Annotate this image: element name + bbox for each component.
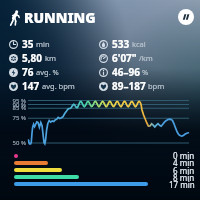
- staticText: 147: [22, 79, 40, 93]
- staticText: km: [45, 53, 57, 63]
- staticText: kcal: [132, 39, 146, 49]
- staticText: 6'07": [112, 51, 137, 65]
- staticText: 76: [22, 65, 34, 79]
- staticText: avg. %: [36, 67, 59, 77]
- staticText: 0 min: [173, 150, 195, 161]
- staticText: 90 %: [12, 101, 26, 109]
- staticText: 6 min: [173, 165, 195, 176]
- staticText: 50 %: [12, 139, 26, 147]
- button[interactable]: Heart rate zone: [14, 168, 62, 172]
- button[interactable]: Heart rate zone: [14, 154, 18, 158]
- staticText: min: [36, 39, 50, 49]
- staticText: 8 min: [173, 172, 195, 183]
- staticText: /km: [139, 53, 153, 63]
- staticText: 85 %: [12, 104, 26, 112]
- staticText: 5,80: [22, 51, 43, 65]
- staticText: %: [142, 67, 149, 77]
- button[interactable]: Heart rate zone: [14, 182, 148, 186]
- staticText: 75 %: [12, 114, 26, 122]
- staticText: avg. bpm: [42, 81, 75, 91]
- staticText: 35: [22, 37, 34, 51]
- button[interactable]: Heart rate zone: [14, 175, 79, 179]
- staticText: bpm: [148, 81, 165, 91]
- button[interactable]: Heart rate zone: [14, 161, 48, 165]
- staticText: 89–187: [112, 79, 146, 93]
- staticText: 533: [112, 37, 130, 51]
- staticText: RUNNING: [24, 8, 96, 27]
- staticText: 46–96: [112, 65, 140, 79]
- staticText: 17 min: [169, 179, 195, 190]
- staticText: 95 %: [12, 97, 26, 105]
- button[interactable]: Pause: [178, 9, 194, 25]
- staticText: 4 min: [173, 157, 195, 168]
